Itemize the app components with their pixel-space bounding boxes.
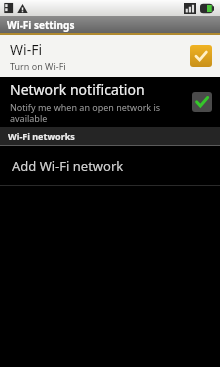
button[interactable]: Network notification	[0, 77, 220, 127]
staticText: Turn on Wi-Fi	[10, 60, 66, 72]
staticText: Add Wi-Fi network	[12, 157, 124, 175]
staticText: Wi-Fi networks	[8, 130, 75, 142]
button[interactable]: Wi-Fi	[0, 35, 220, 77]
staticText: Wi-Fi	[10, 40, 43, 59]
button[interactable]: Add Wi-Fi network	[0, 146, 220, 185]
staticText: Network notification	[10, 80, 145, 99]
button[interactable]: Turn on Wi-Fi	[190, 45, 212, 67]
staticText: Notify me when an open network is availa…	[10, 101, 186, 124]
button[interactable]: Network notification	[192, 92, 212, 112]
staticText: Wi-Fi settings	[7, 18, 75, 32]
